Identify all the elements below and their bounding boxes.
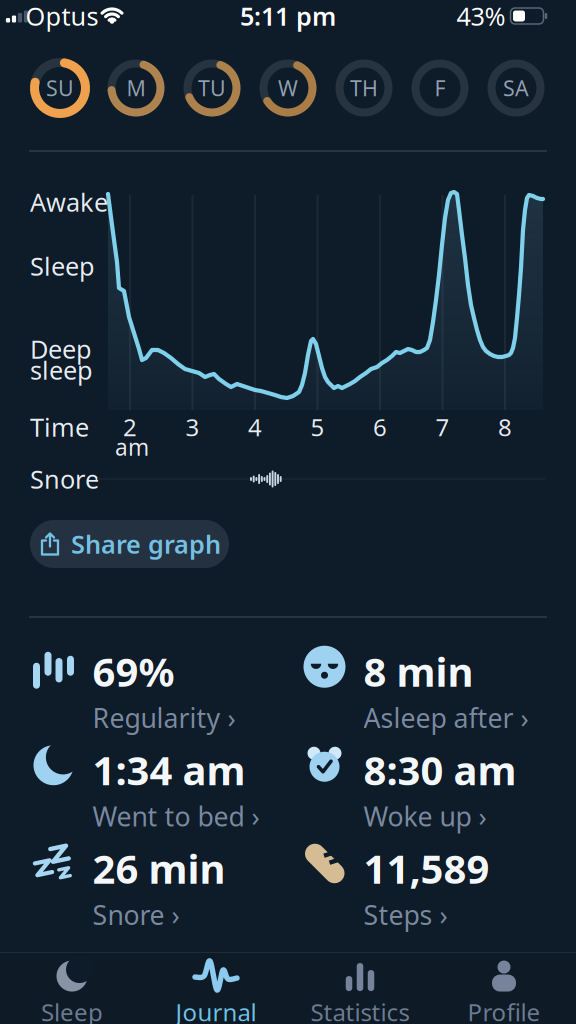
button[interactable]: 8:30 am <box>302 746 558 830</box>
staticText: 8:30 am <box>363 743 516 796</box>
button[interactable]: SU <box>29 57 91 119</box>
staticText: Asleep after › <box>363 700 528 735</box>
button[interactable]: Statistics <box>295 959 425 1024</box>
staticText: 4 <box>248 411 262 443</box>
staticText: Snore <box>30 462 99 496</box>
staticText: 5:11 pm <box>240 0 336 33</box>
staticText: 69% <box>92 645 174 698</box>
staticText: 5 <box>310 411 324 443</box>
staticText: Went to bed › <box>92 798 259 834</box>
staticText: Sleep <box>30 249 95 283</box>
button[interactable]: Journal <box>151 959 281 1024</box>
button[interactable]: W <box>257 57 319 119</box>
button[interactable]: TU <box>181 57 243 119</box>
staticText: Profile <box>467 996 540 1024</box>
staticText: Steps › <box>363 897 447 932</box>
staticText: Optus <box>25 0 98 33</box>
staticText: 6 <box>373 411 387 443</box>
staticText: M <box>126 74 145 102</box>
button[interactable]: Sleep <box>7 959 137 1024</box>
staticText: Deep <box>30 332 92 366</box>
staticText: 2 <box>123 411 137 443</box>
staticText: am <box>115 432 149 462</box>
staticText: 43% <box>456 0 505 33</box>
staticText: 8 <box>498 411 512 443</box>
staticText: 11,589 <box>363 842 489 895</box>
staticText: Statistics <box>310 996 409 1024</box>
staticText: 8 min <box>363 645 473 698</box>
staticText: Woke up › <box>363 798 486 834</box>
staticText: W <box>278 74 298 102</box>
staticText: SA <box>503 74 529 102</box>
button[interactable]: 1:34 am <box>31 746 287 830</box>
staticText: 3 <box>185 411 199 443</box>
staticText: Share graph <box>71 527 221 561</box>
staticText: Regularity › <box>92 700 235 735</box>
staticText: F <box>434 74 445 102</box>
button[interactable]: 8 min <box>302 648 558 732</box>
staticText: Time <box>30 410 89 444</box>
button[interactable]: 26 min <box>31 845 287 929</box>
staticText: 1:34 am <box>92 743 245 796</box>
staticText: Awake <box>30 185 108 219</box>
staticText: 7 <box>435 411 449 443</box>
button[interactable]: Profile <box>439 959 569 1024</box>
staticText: SU <box>46 74 74 102</box>
staticText: Journal <box>175 996 256 1024</box>
button[interactable]: 11,589 <box>302 845 558 929</box>
button[interactable]: 69% <box>31 648 287 732</box>
button[interactable]: F <box>409 57 471 119</box>
staticText: TH <box>350 74 378 102</box>
staticText: 26 min <box>92 842 225 895</box>
button[interactable]: M <box>105 57 167 119</box>
button[interactable]: SA <box>485 57 547 119</box>
staticText: Sleep <box>41 996 103 1024</box>
staticText: sleep <box>30 353 93 387</box>
staticText: Snore › <box>92 897 179 932</box>
staticText: TU <box>198 74 226 102</box>
button[interactable]: Share graph <box>30 520 229 568</box>
button[interactable]: TH <box>333 57 395 119</box>
